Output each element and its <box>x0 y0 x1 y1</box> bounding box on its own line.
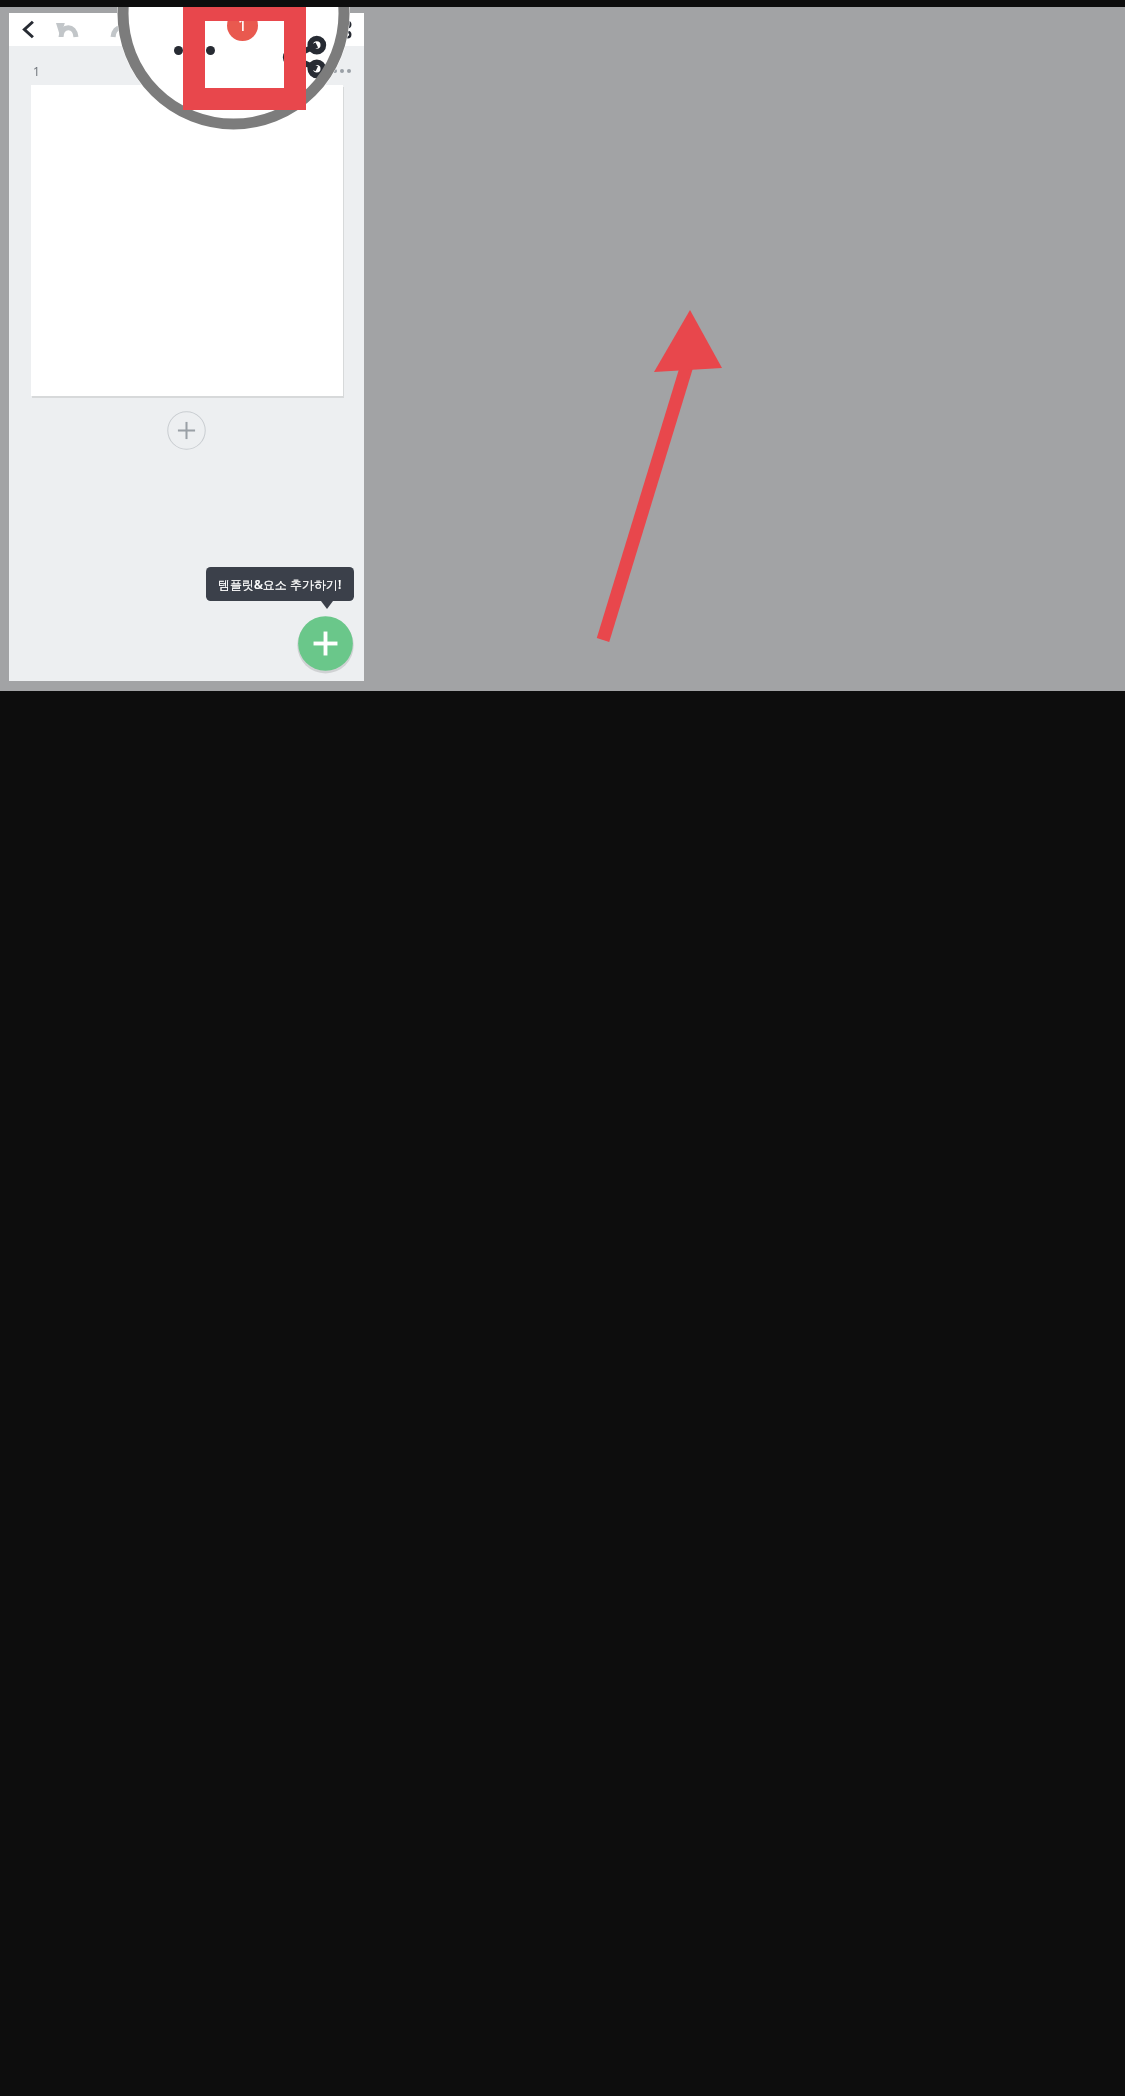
button[interactable]: Add <box>297 615 354 672</box>
button[interactable] <box>31 85 343 396</box>
button[interactable]: More options <box>282 13 315 46</box>
button[interactable]: 템플릿&요소 추가하기! <box>206 567 354 601</box>
staticText: 템플릿&요소 추가하기! <box>218 576 342 592</box>
staticText: 1 <box>238 15 247 36</box>
button[interactable]: Fill colour <box>296 61 319 80</box>
button[interactable]: Back <box>11 13 44 46</box>
button[interactable]: Undo <box>50 13 83 46</box>
button[interactable]: Redo <box>106 13 139 46</box>
staticText: 1 <box>33 63 40 79</box>
button[interactable]: Share <box>326 13 359 46</box>
button[interactable]: Add page <box>167 411 206 450</box>
button[interactable]: Page options <box>330 61 353 80</box>
